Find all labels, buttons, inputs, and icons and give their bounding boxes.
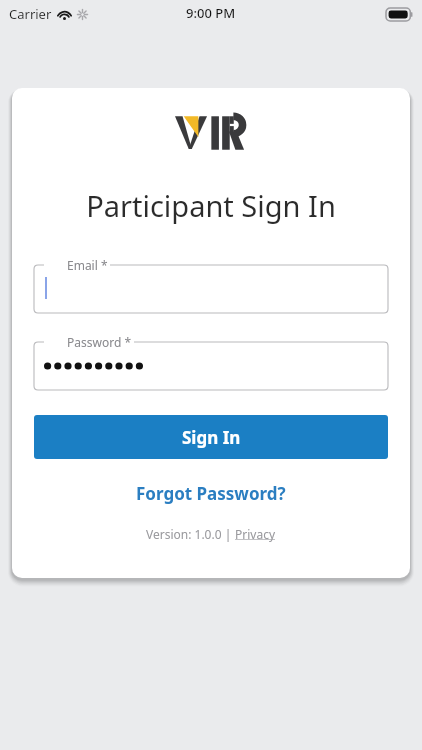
button[interactable]: Email * <box>34 257 388 313</box>
button[interactable]: Privacy <box>235 526 276 542</box>
staticText: Participant Sign In <box>86 186 336 225</box>
staticText: Forgot Password? <box>136 482 286 505</box>
staticText: Privacy <box>235 526 276 542</box>
button[interactable]: Sign In <box>34 415 388 459</box>
staticText: Password * <box>67 334 132 350</box>
staticText: Email * <box>67 257 108 273</box>
staticText: Carrier <box>9 5 52 23</box>
button[interactable]: Forgot Password? <box>128 479 294 508</box>
button[interactable]: Password * <box>34 334 388 390</box>
staticText: Version: 1.0.0 | <box>146 526 235 542</box>
staticText: Sign In <box>182 426 241 449</box>
staticText: 9:00 PM <box>186 4 236 22</box>
